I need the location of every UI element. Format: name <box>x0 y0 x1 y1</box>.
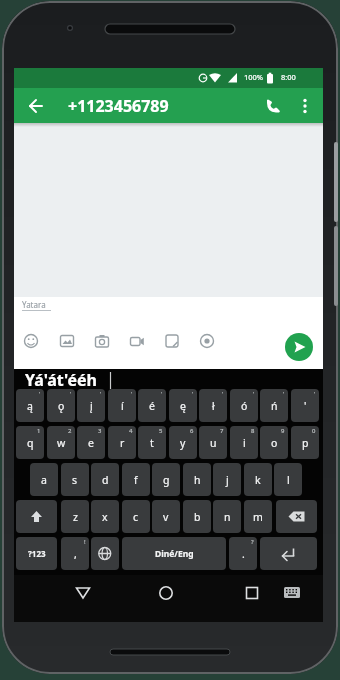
staticText: 5 <box>159 427 163 435</box>
button[interactable]: , <box>61 537 89 570</box>
staticText: t <box>150 436 154 450</box>
button[interactable]: l <box>274 463 302 496</box>
staticText: k <box>255 473 261 487</box>
button[interactable]: ł <box>199 389 227 422</box>
staticText: ǫ <box>58 399 65 413</box>
button[interactable] <box>16 500 57 533</box>
staticText: ?123 <box>28 548 46 559</box>
button[interactable]: f <box>122 463 150 496</box>
button[interactable]: n <box>213 500 241 533</box>
staticText: s <box>72 473 78 487</box>
button[interactable] <box>69 580 97 606</box>
staticText: o <box>271 436 278 450</box>
staticText: Yá'át'ééh <box>25 369 97 389</box>
button[interactable]: p <box>291 426 319 459</box>
button[interactable]: z <box>61 500 89 533</box>
button[interactable]: d <box>91 463 119 496</box>
staticText: c <box>133 510 139 524</box>
button[interactable]: Yatara <box>14 297 323 369</box>
button[interactable]: u <box>199 426 227 459</box>
button[interactable] <box>91 537 119 570</box>
button[interactable]: q <box>16 426 44 459</box>
button[interactable] <box>58 332 76 350</box>
button[interactable]: j <box>213 463 241 496</box>
button[interactable]: ' <box>291 389 319 422</box>
button[interactable] <box>93 332 111 350</box>
button[interactable]: m <box>244 500 272 533</box>
button[interactable] <box>294 94 316 118</box>
button[interactable]: ?123 <box>16 537 57 570</box>
button[interactable]: ę <box>169 389 197 422</box>
staticText: i <box>243 436 246 450</box>
button[interactable]: ó <box>230 389 258 422</box>
button[interactable] <box>163 332 181 350</box>
button[interactable]: . <box>229 537 257 570</box>
button[interactable]: x <box>91 500 119 533</box>
button[interactable]: k <box>244 463 272 496</box>
staticText: ' <box>314 390 316 398</box>
button[interactable]: é <box>138 389 166 422</box>
button[interactable]: b <box>183 500 211 533</box>
staticText: ' <box>161 390 163 398</box>
staticText: ? <box>251 538 254 546</box>
button[interactable]: ń <box>260 389 288 422</box>
staticText: y <box>180 436 186 450</box>
staticText: z <box>73 510 78 524</box>
staticText: q <box>27 436 34 450</box>
button[interactable]: s <box>61 463 89 496</box>
button[interactable] <box>152 580 180 606</box>
button[interactable]: Yá'át'ééh <box>14 369 144 389</box>
staticText: į <box>90 399 93 413</box>
button[interactable] <box>276 500 317 533</box>
button[interactable]: w <box>47 426 75 459</box>
staticText: b <box>194 510 201 524</box>
button[interactable] <box>260 537 317 570</box>
button[interactable]: e <box>77 426 105 459</box>
button[interactable] <box>22 332 40 350</box>
staticText: g <box>163 473 170 487</box>
staticText: ' <box>222 390 224 398</box>
button[interactable] <box>285 333 313 361</box>
button[interactable]: o <box>260 426 288 459</box>
button[interactable]: a <box>30 463 58 496</box>
staticText: n <box>224 510 231 524</box>
button[interactable] <box>22 93 50 119</box>
staticText: f <box>134 473 138 487</box>
staticText: 0 <box>312 427 316 435</box>
staticText: ' <box>100 390 102 398</box>
button[interactable] <box>198 332 216 350</box>
button[interactable]: ǫ <box>47 389 75 422</box>
staticText: ó <box>241 399 248 413</box>
staticText: 2 <box>68 427 72 435</box>
staticText: Yatara <box>22 299 46 310</box>
staticText: 8:00 <box>281 72 296 82</box>
button[interactable]: t <box>138 426 166 459</box>
button[interactable]: r <box>108 426 136 459</box>
button[interactable] <box>238 580 266 606</box>
staticText: ' <box>253 390 255 398</box>
button[interactable] <box>262 94 286 118</box>
staticText: l <box>287 473 290 487</box>
button[interactable]: í <box>108 389 136 422</box>
button[interactable]: Diné/Eng <box>122 537 226 570</box>
staticText: m <box>253 510 263 524</box>
staticText: ą <box>27 399 33 413</box>
staticText: ' <box>131 390 133 398</box>
button[interactable]: i <box>230 426 258 459</box>
button[interactable]: į <box>77 389 105 422</box>
staticText: 4 <box>129 427 133 435</box>
staticText: w <box>57 436 66 450</box>
staticText: , <box>74 547 77 561</box>
button[interactable]: v <box>152 500 180 533</box>
button[interactable] <box>280 582 304 604</box>
button[interactable]: h <box>183 463 211 496</box>
button[interactable]: ą <box>16 389 44 422</box>
staticText: 8 <box>251 427 255 435</box>
staticText: í <box>121 399 124 413</box>
staticText: ! <box>84 538 86 546</box>
button[interactable] <box>128 332 146 350</box>
staticText: d <box>102 473 109 487</box>
button[interactable]: g <box>152 463 180 496</box>
button[interactable]: c <box>122 500 150 533</box>
button[interactable]: y <box>169 426 197 459</box>
